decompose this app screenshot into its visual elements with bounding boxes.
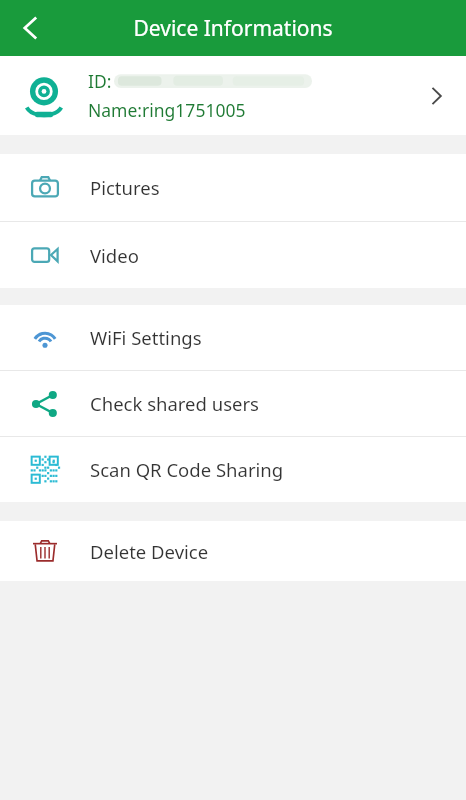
staticText: Device Informations [133, 14, 333, 43]
button[interactable]: Scan QR Code Sharing [0, 437, 466, 502]
button[interactable]: ID: [0, 56, 466, 135]
staticText: Delete Device [90, 539, 209, 564]
staticText: ID: [88, 69, 112, 93]
button[interactable]: Check shared users [0, 371, 466, 436]
staticText: Scan QR Code Sharing [90, 457, 284, 482]
staticText: Video [90, 243, 139, 268]
staticText: WiFi Settings [90, 325, 202, 350]
button[interactable]: Video [0, 222, 466, 288]
button[interactable]: Back [0, 0, 62, 56]
button[interactable]: WiFi Settings [0, 305, 466, 370]
staticText: Check shared users [90, 391, 259, 416]
staticText: Name:ring1751005 [88, 98, 246, 122]
button[interactable]: Delete Device [0, 521, 466, 581]
button[interactable]: Pictures [0, 154, 466, 221]
staticText: Pictures [90, 175, 160, 200]
